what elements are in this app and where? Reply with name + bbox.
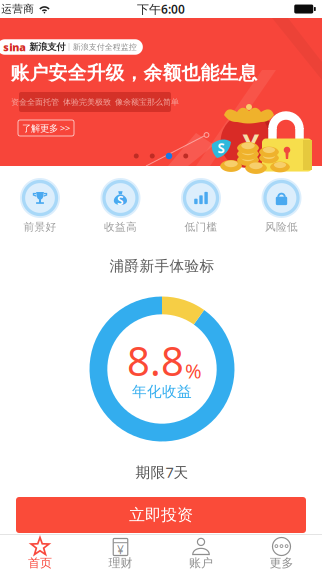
staticText: 8.8	[127, 334, 184, 387]
button[interactable]: 立即投资	[16, 497, 306, 533]
staticText: 风险低	[265, 220, 298, 233]
staticText: 账户	[189, 556, 213, 570]
staticText: 运营商	[1, 2, 34, 15]
staticText: 下午6:00	[137, 1, 185, 17]
staticText: 更多	[269, 556, 293, 570]
button[interactable]: 前景好	[0, 178, 80, 236]
staticText: 资金全面托管 体验完美极致 像余额宝那么简单	[11, 97, 179, 107]
staticText: %	[185, 357, 202, 384]
staticText: ¥	[117, 542, 124, 558]
button[interactable]: 了解更多 >>	[18, 120, 74, 136]
button[interactable]: 账户	[161, 534, 241, 572]
staticText: 期限7天	[135, 462, 188, 482]
staticText: 立即投资	[129, 505, 193, 525]
staticText: 收益高	[104, 220, 137, 233]
staticText: ¥	[242, 124, 259, 163]
button[interactable]: 风险低	[241, 178, 322, 236]
staticText: 首页	[28, 556, 52, 570]
staticText: 前景好	[23, 220, 56, 233]
staticText: S	[217, 139, 224, 157]
button[interactable]: 低门槛	[161, 178, 241, 236]
button[interactable]: S	[80, 178, 161, 236]
staticText: 了解更多 >>	[22, 122, 70, 134]
staticText: sina	[3, 40, 26, 54]
staticText: 低门槛	[184, 220, 217, 233]
staticText: 年化收益	[132, 382, 192, 400]
staticText: 账户安全升级，余额也能生息	[10, 61, 257, 84]
staticText: S	[117, 192, 124, 208]
staticText: 新浪支付全程监控	[73, 42, 137, 52]
staticText: 浦爵新手体验标	[109, 257, 214, 275]
button[interactable]: ¥	[80, 534, 161, 572]
staticText: 新浪支付	[29, 41, 65, 53]
staticText: 理财	[108, 556, 132, 570]
button[interactable]: 首页	[0, 534, 80, 572]
button[interactable]: 更多	[241, 534, 322, 572]
